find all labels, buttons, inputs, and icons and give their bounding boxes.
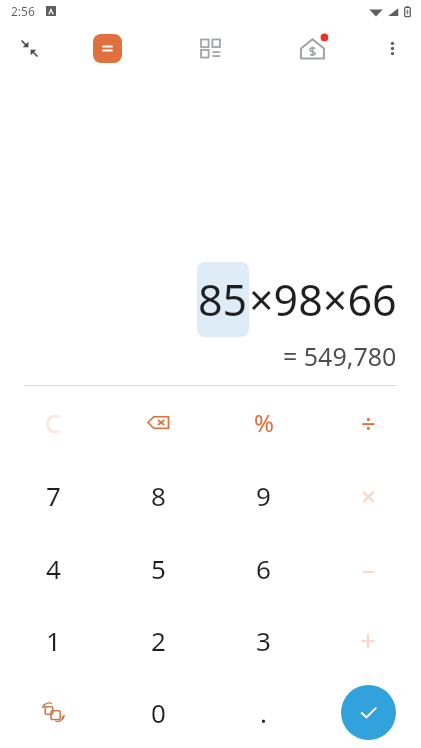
button[interactable]: 4 bbox=[0, 532, 106, 604]
button[interactable]: + bbox=[316, 604, 421, 676]
button[interactable]: Convert bbox=[0, 676, 106, 748]
button[interactable]: % bbox=[211, 386, 316, 459]
staticText: ÷ bbox=[361, 405, 376, 440]
button[interactable]: 1 bbox=[0, 604, 106, 676]
staticText: C bbox=[45, 406, 61, 440]
staticText: 2 bbox=[151, 623, 166, 658]
staticText: = 549,780 bbox=[283, 339, 397, 373]
button[interactable]: More options bbox=[370, 26, 414, 70]
staticText: 85 bbox=[198, 270, 248, 329]
staticText: 5 bbox=[151, 551, 166, 586]
staticText: 4 bbox=[46, 551, 61, 586]
button[interactable]: C bbox=[0, 386, 106, 459]
staticText: 2:56 bbox=[11, 3, 35, 19]
staticText: % bbox=[254, 406, 274, 439]
button[interactable]: . bbox=[211, 676, 316, 748]
button[interactable]: Done bbox=[341, 685, 396, 740]
button[interactable]: Calculator bbox=[85, 26, 129, 70]
button[interactable]: Backspace bbox=[106, 386, 211, 459]
staticText: ×98×66 bbox=[249, 270, 397, 329]
button[interactable]: Templates bbox=[187, 25, 233, 71]
staticText: 7 bbox=[46, 478, 61, 513]
button[interactable]: 7 bbox=[0, 459, 106, 532]
button[interactable]: 2 bbox=[106, 604, 211, 676]
staticText: × bbox=[361, 478, 376, 513]
staticText: . bbox=[260, 695, 267, 730]
staticText: 3 bbox=[256, 623, 271, 658]
button[interactable]: ÷ bbox=[316, 386, 421, 459]
staticText: 8 bbox=[151, 478, 166, 513]
staticText: 1 bbox=[46, 623, 61, 658]
button[interactable]: Mortgage bbox=[288, 24, 336, 72]
staticText: 6 bbox=[256, 551, 271, 586]
staticText: + bbox=[360, 621, 377, 659]
button[interactable]: 6 bbox=[211, 532, 316, 604]
button[interactable]: 8 bbox=[106, 459, 211, 532]
staticText: 0 bbox=[151, 695, 166, 730]
staticText: 9 bbox=[256, 478, 271, 513]
button[interactable]: Collapse bbox=[7, 26, 51, 70]
button[interactable]: × bbox=[316, 459, 421, 532]
button[interactable]: 0 bbox=[106, 676, 211, 748]
button[interactable]: 3 bbox=[211, 604, 316, 676]
staticText: – bbox=[362, 551, 376, 586]
button[interactable]: 9 bbox=[211, 459, 316, 532]
button[interactable]: 5 bbox=[106, 532, 211, 604]
